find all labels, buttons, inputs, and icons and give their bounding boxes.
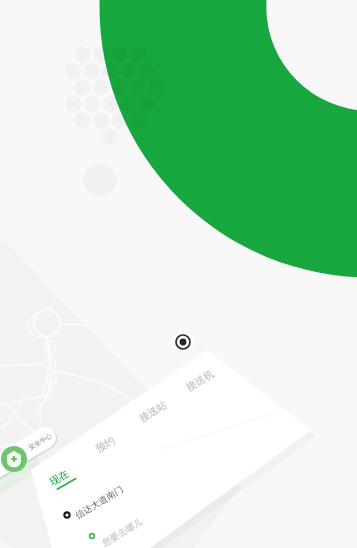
button[interactable] [0, 0, 357, 548]
